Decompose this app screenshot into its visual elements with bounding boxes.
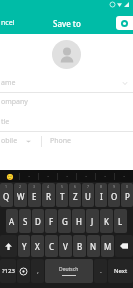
staticText: ame <box>1 78 16 88</box>
button[interactable]: ompany <box>0 93 133 111</box>
button[interactable]: , <box>31 259 44 283</box>
staticText: Q <box>3 191 10 202</box>
staticText: D <box>35 216 41 227</box>
staticText: ?123 <box>2 267 15 275</box>
button[interactable]: L <box>114 209 127 233</box>
button[interactable]: 🙂 <box>0 170 19 182</box>
button[interactable]: F <box>45 209 57 233</box>
button[interactable]: Shift <box>0 235 17 257</box>
staticText: 6 <box>74 184 77 189</box>
staticText: Phone <box>50 136 72 146</box>
button[interactable]: 7 <box>82 183 94 207</box>
button[interactable]: 5 <box>56 183 68 207</box>
button[interactable]: 2 <box>14 183 27 207</box>
staticText: W <box>17 191 25 202</box>
button[interactable]: obile <box>0 136 31 146</box>
button[interactable]: ?123 <box>0 259 16 283</box>
staticText: 2 <box>19 184 22 189</box>
staticText: 5 <box>61 184 64 189</box>
button[interactable]: V <box>59 235 72 257</box>
staticText: M <box>104 241 112 252</box>
staticText: tle <box>1 117 10 127</box>
button[interactable]: Phone <box>50 132 133 150</box>
staticText: J <box>91 216 94 227</box>
staticText: E <box>32 191 37 202</box>
button[interactable]: Space <box>45 259 93 283</box>
staticText: Z <box>73 191 78 202</box>
button[interactable]: ame <box>0 74 133 92</box>
staticText: K <box>104 216 109 227</box>
button[interactable]: S <box>19 209 31 233</box>
staticText: 🙂 <box>6 173 14 180</box>
staticText: · <box>47 172 49 180</box>
button[interactable]: B <box>73 235 86 257</box>
staticText: T <box>60 191 65 202</box>
button[interactable]: Next <box>108 259 133 283</box>
button[interactable]: 1 <box>0 183 13 207</box>
button[interactable]: 4 <box>42 183 55 207</box>
button[interactable]: M <box>101 235 114 257</box>
button[interactable]: C <box>45 235 58 257</box>
staticText: 3 <box>33 184 36 189</box>
button[interactable]: 8 <box>95 183 107 207</box>
staticText: I <box>100 191 103 202</box>
button[interactable]: A <box>6 209 18 233</box>
staticText: F <box>49 216 54 227</box>
button[interactable]: . <box>94 259 107 283</box>
button[interactable]: H <box>72 209 85 233</box>
button[interactable]: 3 <box>28 183 41 207</box>
staticText: A <box>9 216 15 227</box>
button[interactable]: Add photo <box>52 40 81 69</box>
staticText: L <box>118 216 123 227</box>
staticText: Save to <box>53 18 81 29</box>
staticText: ncel <box>1 18 15 28</box>
staticText: S <box>23 216 28 227</box>
button[interactable]: ncel <box>0 18 17 28</box>
staticText: G <box>62 216 68 227</box>
staticText: 0 <box>126 184 129 189</box>
staticText: · <box>104 172 106 180</box>
staticText: 8 <box>100 184 103 189</box>
staticText: V <box>63 241 68 252</box>
staticText: 9 <box>113 184 116 189</box>
button[interactable]: Account <box>116 16 133 30</box>
button[interactable]: Backspace <box>115 235 133 257</box>
button[interactable]: tle <box>0 113 133 131</box>
staticText: Next <box>114 267 128 275</box>
staticText: · <box>66 172 68 180</box>
staticText: H <box>76 216 82 227</box>
staticText: , <box>37 266 39 276</box>
staticText: N <box>90 241 97 252</box>
button[interactable]: 9 <box>108 183 120 207</box>
staticText: · <box>123 172 125 180</box>
staticText: O <box>111 191 118 202</box>
staticText: P <box>125 191 130 202</box>
button[interactable]: Emoji <box>17 259 30 283</box>
button[interactable]: 0 <box>121 183 133 207</box>
button[interactable]: J <box>86 209 99 233</box>
staticText: B <box>77 241 83 252</box>
staticText: Y <box>22 241 27 252</box>
button[interactable]: 6 <box>69 183 81 207</box>
button[interactable]: K <box>100 209 113 233</box>
staticText: R <box>46 191 51 202</box>
staticText: 4 <box>47 184 50 189</box>
staticText: 1 <box>5 184 8 189</box>
button[interactable]: D <box>32 209 44 233</box>
button[interactable]: Y <box>18 235 30 257</box>
button[interactable]: X <box>31 235 44 257</box>
button[interactable]: G <box>58 209 71 233</box>
button[interactable]: N <box>87 235 100 257</box>
staticText: obile <box>1 136 18 146</box>
staticText: · <box>85 172 87 180</box>
staticText: . <box>100 266 102 276</box>
staticText: Deutsch <box>59 266 79 273</box>
staticText: · <box>28 172 30 180</box>
staticText: C <box>49 241 55 252</box>
